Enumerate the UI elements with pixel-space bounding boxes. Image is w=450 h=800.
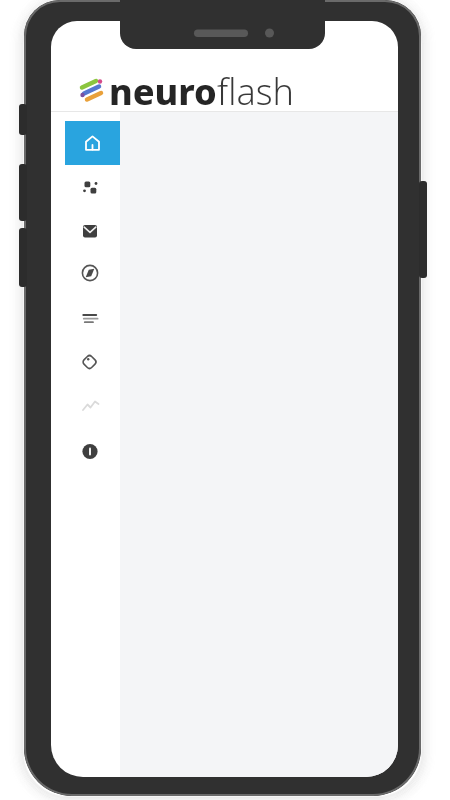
- button[interactable]: [65, 429, 120, 473]
- staticText: neuro: [109, 67, 217, 116]
- button[interactable]: [65, 209, 120, 253]
- button[interactable]: [65, 253, 120, 297]
- button[interactable]: [65, 121, 120, 165]
- button[interactable]: [65, 341, 120, 385]
- staticText: flash: [217, 67, 295, 116]
- button[interactable]: [65, 385, 120, 429]
- button[interactable]: [65, 297, 120, 341]
- button[interactable]: [65, 165, 120, 209]
